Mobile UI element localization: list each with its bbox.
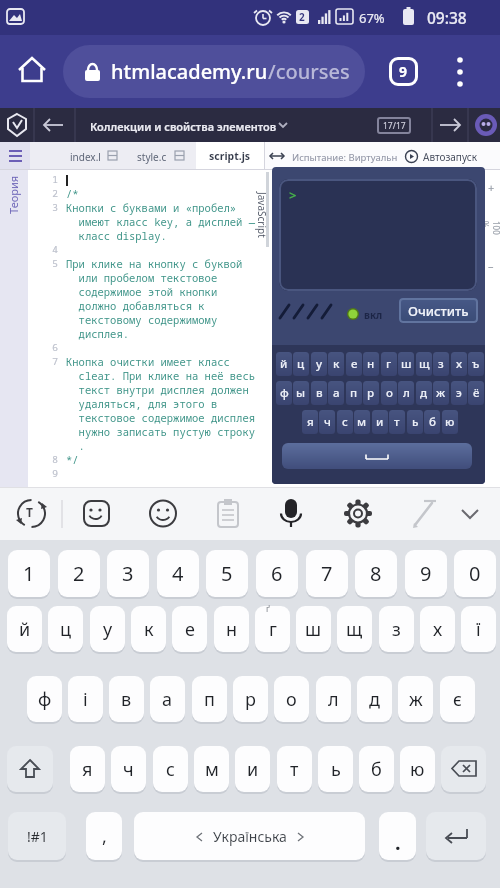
button[interactable]: х [451, 352, 467, 376]
button[interactable] [36, 108, 76, 142]
button[interactable]: т [277, 746, 312, 792]
button[interactable]: г [255, 606, 290, 652]
button[interactable]: ж [433, 381, 449, 405]
button[interactable] [16, 56, 48, 86]
button[interactable]: ч [111, 746, 146, 792]
button[interactable]: ъ [468, 352, 484, 376]
button[interactable]: є [440, 676, 475, 722]
button[interactable]: к [328, 352, 344, 376]
button[interactable]: к [131, 606, 166, 652]
button[interactable]: у [311, 352, 327, 376]
button[interactable]: 2 [58, 550, 100, 597]
button[interactable] [337, 493, 379, 535]
button[interactable]: с [337, 410, 353, 434]
button[interactable]: щ [337, 606, 372, 652]
button[interactable] [441, 746, 486, 792]
button[interactable]: ч [319, 410, 335, 434]
button[interactable]: и [372, 410, 388, 434]
button[interactable]: а [328, 381, 344, 405]
button[interactable]: ё [468, 381, 484, 405]
button[interactable] [208, 493, 250, 535]
button[interactable]: Очистить [399, 298, 478, 323]
button[interactable]: 5 [206, 550, 248, 597]
button[interactable] [282, 443, 472, 469]
button[interactable]: в [109, 676, 144, 722]
button[interactable]: 0 [454, 550, 496, 597]
button[interactable]: ы [293, 381, 309, 405]
button[interactable]: н [214, 606, 249, 652]
button[interactable]: ж [398, 676, 433, 722]
button[interactable] [448, 52, 472, 92]
button[interactable]: о [381, 381, 397, 405]
button[interactable]: в [311, 381, 327, 405]
button[interactable]: ш [296, 606, 331, 652]
button[interactable]: . [379, 812, 416, 860]
button[interactable] [8, 493, 56, 535]
button[interactable]: с [153, 746, 188, 792]
button[interactable] [426, 812, 486, 860]
button[interactable]: у [90, 606, 125, 652]
button[interactable]: т [389, 410, 405, 434]
button[interactable]: д [416, 381, 432, 405]
button[interactable]: 9 [405, 550, 447, 597]
button[interactable]: 7 [306, 550, 348, 597]
button[interactable]: г [381, 352, 397, 376]
button[interactable]: 4 [157, 550, 199, 597]
button[interactable]: 6 [256, 550, 298, 597]
button[interactable] [452, 493, 494, 535]
button[interactable]: htmlacademy.ru [63, 45, 365, 98]
button[interactable]: ю [442, 410, 458, 434]
button[interactable]: л [398, 381, 414, 405]
button[interactable]: и [235, 746, 270, 792]
button[interactable]: й [7, 606, 42, 652]
button[interactable]: і [68, 676, 103, 722]
button[interactable]: й [276, 352, 292, 376]
button[interactable]: 1 [8, 550, 50, 597]
button[interactable]: ї [461, 606, 496, 652]
button[interactable] [7, 746, 53, 792]
button[interactable]: п [346, 381, 362, 405]
button[interactable]: ф [27, 676, 62, 722]
button[interactable] [270, 493, 312, 535]
button[interactable]: 3 [107, 550, 149, 597]
button[interactable]: ю [400, 746, 435, 792]
button[interactable]: э [451, 381, 467, 405]
button[interactable]: щ [416, 352, 432, 376]
button[interactable]: ц [48, 606, 83, 652]
button[interactable]: ь [407, 410, 423, 434]
button[interactable]: х [420, 606, 455, 652]
button[interactable]: я [70, 746, 105, 792]
button[interactable]: Українська [134, 812, 365, 860]
button[interactable]: п [192, 676, 227, 722]
button[interactable]: а [150, 676, 185, 722]
button[interactable]: р [233, 676, 268, 722]
button[interactable] [76, 493, 118, 535]
button[interactable]: з [433, 352, 449, 376]
button[interactable]: , [86, 812, 122, 860]
button[interactable]: б [359, 746, 394, 792]
button[interactable]: script.js [196, 142, 264, 170]
button[interactable]: б [424, 410, 440, 434]
button[interactable]: л [316, 676, 351, 722]
button[interactable] [434, 108, 468, 142]
button[interactable]: ц [293, 352, 309, 376]
button[interactable] [144, 493, 186, 535]
button[interactable]: е [172, 606, 207, 652]
button[interactable] [404, 493, 446, 535]
button[interactable]: ь [318, 746, 353, 792]
button[interactable]: д [357, 676, 392, 722]
button[interactable]: о [274, 676, 309, 722]
button[interactable] [0, 142, 30, 170]
button[interactable]: н [363, 352, 379, 376]
button[interactable]: м [354, 410, 370, 434]
button[interactable]: р [363, 381, 379, 405]
button[interactable]: ф [276, 381, 292, 405]
button[interactable]: 8 [355, 550, 397, 597]
button[interactable]: !#1 [8, 812, 66, 860]
button[interactable]: е [346, 352, 362, 376]
button[interactable]: з [379, 606, 414, 652]
button[interactable]: я [302, 410, 318, 434]
button[interactable]: ш [398, 352, 414, 376]
button[interactable]: 9 [389, 57, 418, 86]
button[interactable]: м [194, 746, 229, 792]
